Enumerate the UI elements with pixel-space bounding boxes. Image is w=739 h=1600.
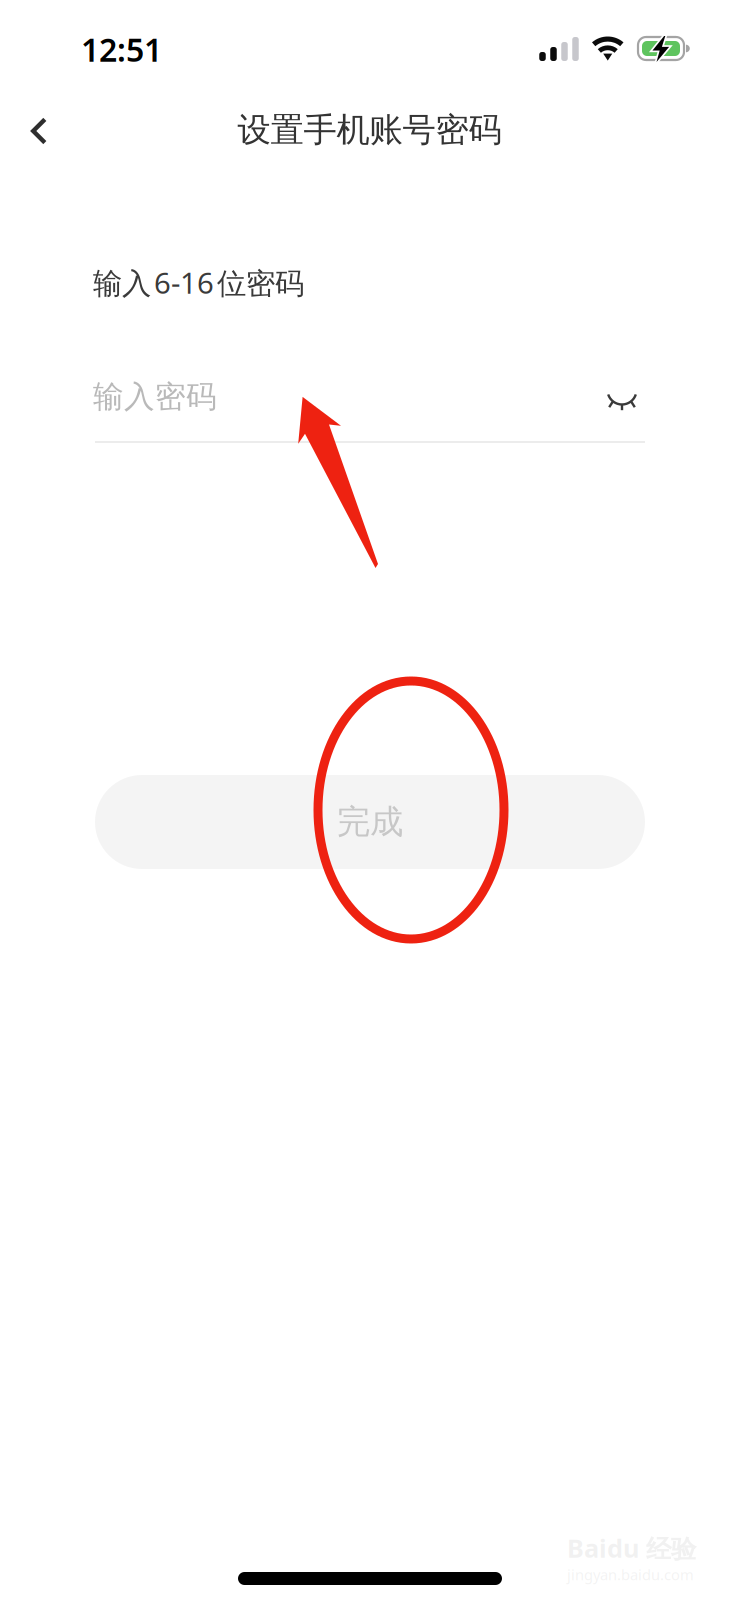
- button[interactable]: Back: [8, 100, 70, 162]
- button[interactable]: 完成: [95, 775, 645, 869]
- staticText: 完成: [337, 801, 403, 842]
- staticText: jingyan.baidu.com: [567, 1565, 694, 1584]
- staticText: 设置手机账号密码: [237, 109, 501, 150]
- staticText: 输入密码: [93, 378, 217, 416]
- staticText: 12:51: [81, 28, 162, 70]
- staticText: 输入 6-16 位密码: [93, 263, 304, 302]
- button[interactable]: Show password: [592, 374, 652, 430]
- staticText: Baidu 经验: [567, 1531, 696, 1565]
